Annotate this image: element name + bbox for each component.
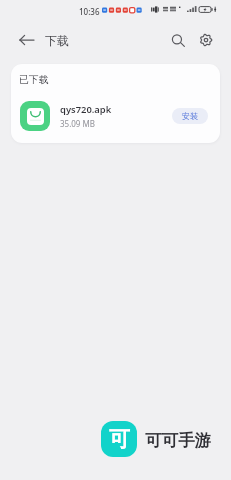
- staticText: 35.09 MB: [60, 118, 95, 129]
- staticText: 可: [109, 426, 130, 452]
- staticText: 可可手游: [145, 430, 211, 451]
- staticText: 安装: [182, 111, 198, 121]
- button[interactable]: 安装: [172, 108, 208, 124]
- button[interactable]: qys720.apk: [11, 101, 220, 143]
- button[interactable]: Search: [165, 27, 191, 53]
- staticText: 已下载: [19, 74, 49, 86]
- staticText: 下载: [45, 33, 69, 48]
- button[interactable]: Back: [16, 29, 38, 51]
- staticText: 10:36: [79, 6, 100, 17]
- staticText: qys720.apk: [60, 103, 112, 116]
- button[interactable]: Settings: [193, 27, 219, 53]
